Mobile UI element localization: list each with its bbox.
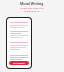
staticText: stories with us: [24, 10, 40, 13]
staticText: Get Started: [13, 62, 25, 65]
staticText: Create and share your: [20, 7, 44, 10]
staticText: Mural Writing: [20, 1, 44, 6]
button[interactable]: Get Started: [9, 61, 29, 65]
